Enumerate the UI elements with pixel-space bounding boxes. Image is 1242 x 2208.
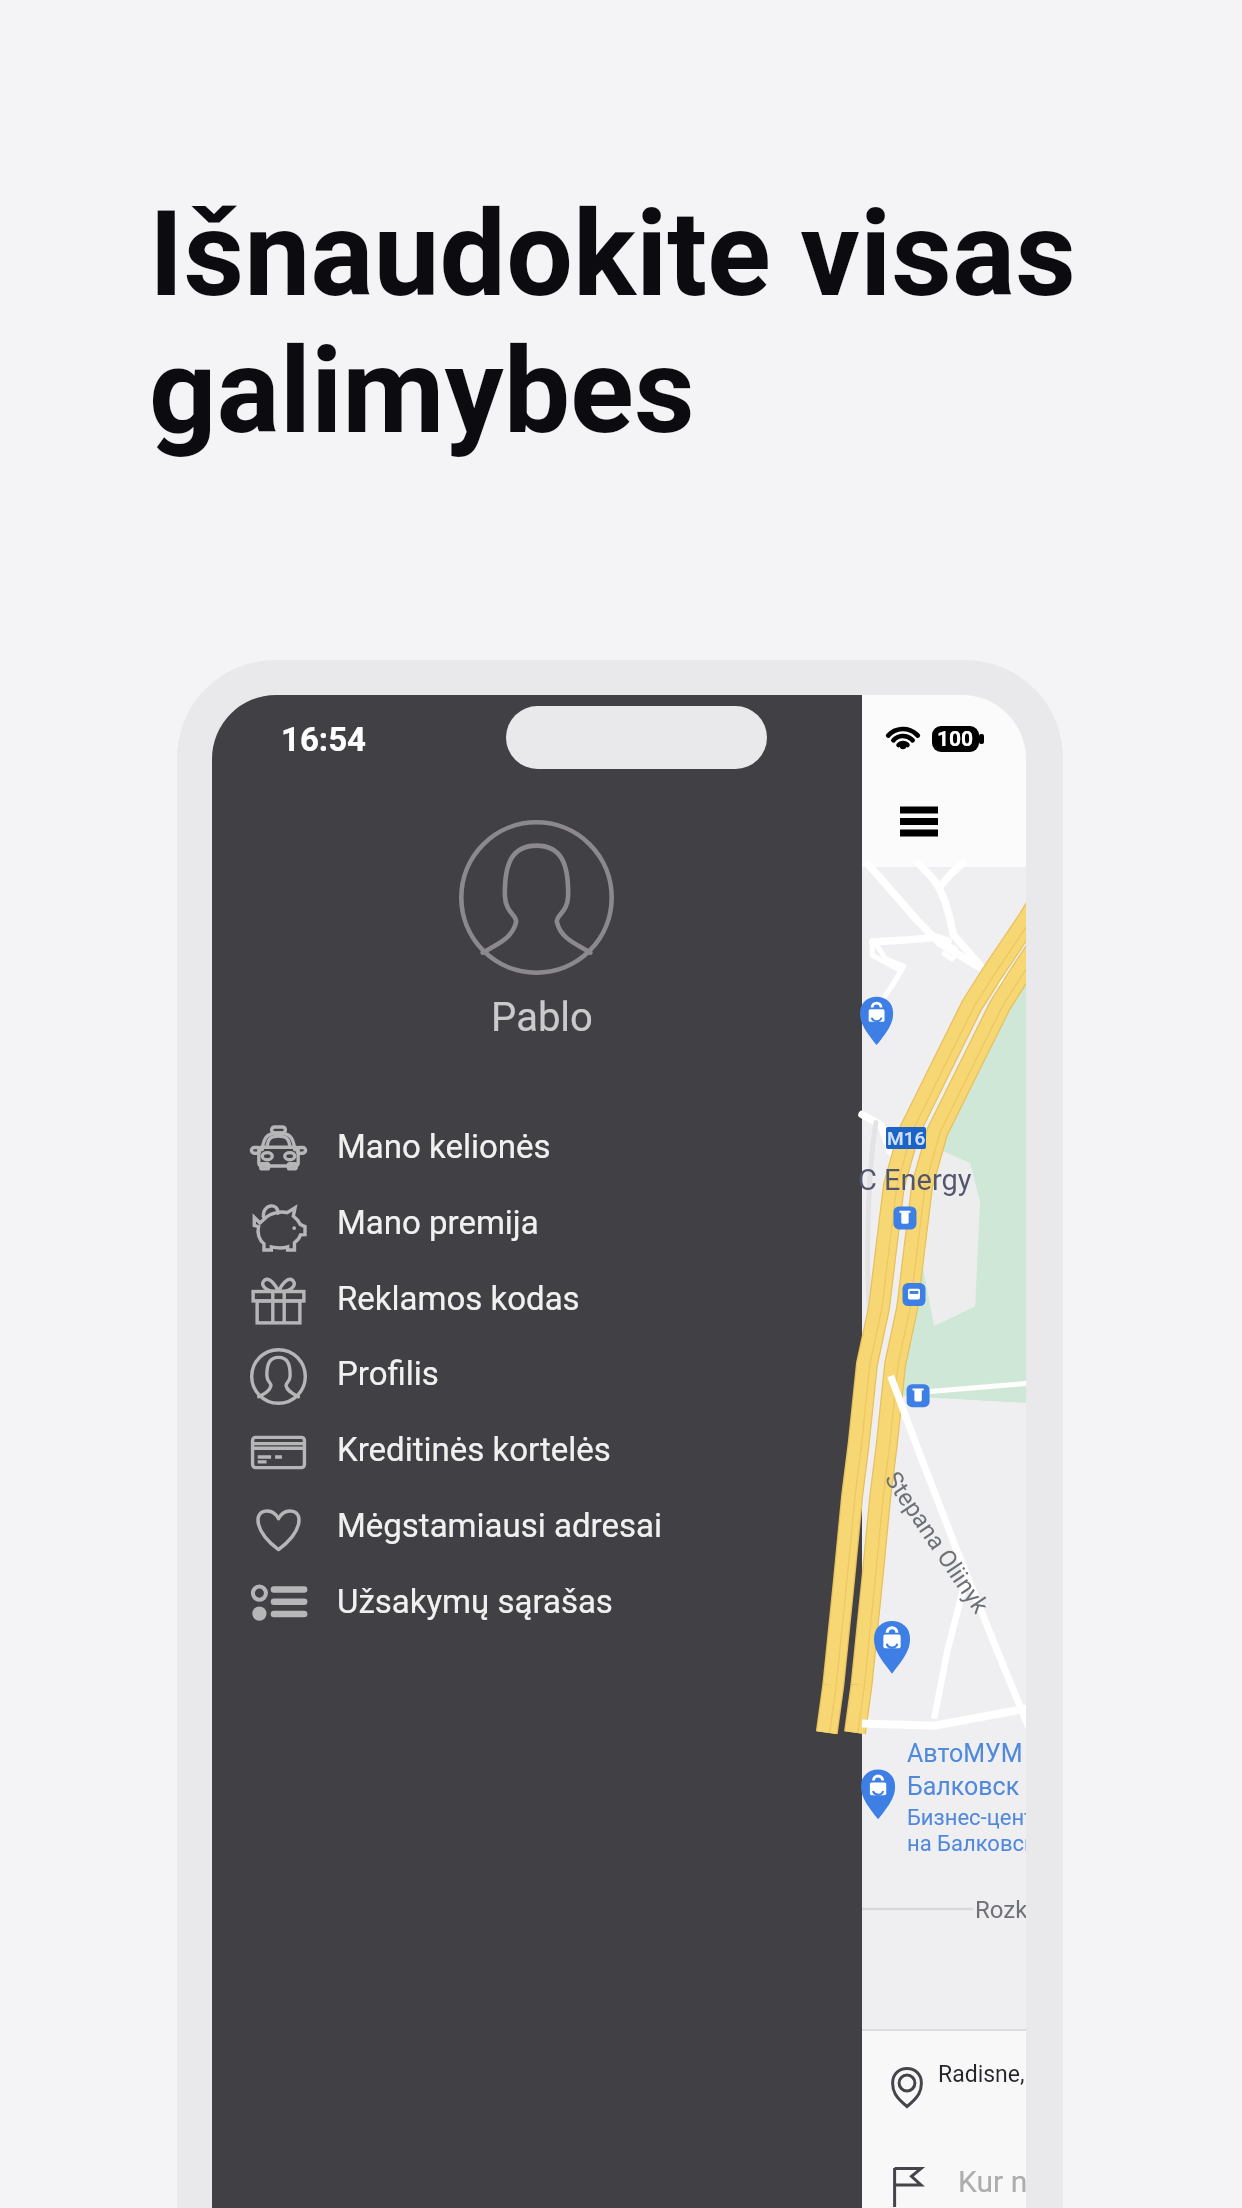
button[interactable]: Menu <box>894 800 944 842</box>
staticText: Pablo <box>222 994 862 1041</box>
staticText: Reklamos kodas <box>337 1279 580 1318</box>
staticText: Stepana Oliinyka descen <box>879 1466 994 1618</box>
button[interactable]: Užsakymų sąrašas <box>219 1563 839 1639</box>
button[interactable]: Mano premija <box>219 1184 839 1260</box>
staticText: Mano kelionės <box>337 1127 551 1166</box>
staticText: Išnaudokite visas galimybes <box>149 186 1076 460</box>
staticText: 100 <box>937 727 974 752</box>
staticText: 16:54 <box>281 720 367 759</box>
staticText: C Energy <box>858 1163 972 1197</box>
staticText: Mėgstamiausi adresai <box>337 1506 662 1545</box>
button[interactable]: Profilis <box>219 1335 839 1411</box>
staticText: Kur n <box>958 2164 1026 2199</box>
staticText: M16 <box>887 1127 926 1149</box>
staticText: Užsakymų sąrašas <box>337 1582 613 1621</box>
staticText: Kreditinės kortelės <box>337 1430 611 1469</box>
button[interactable]: Kreditinės kortelės <box>219 1411 839 1487</box>
staticText: Балковск <box>907 1772 1020 1801</box>
staticText: Profilis <box>337 1354 439 1393</box>
staticText: АвтоМУМ <box>907 1739 1023 1768</box>
staticText: Бизнес-цент <box>907 1805 1026 1831</box>
button[interactable]: Reklamos kodas <box>219 1260 839 1336</box>
staticText: Mano premija <box>337 1203 539 1242</box>
staticText: Radisne, <box>938 2061 1025 2088</box>
staticText: Rozk <box>975 1896 1026 1924</box>
staticText: на Балковск <box>907 1831 1026 1857</box>
button[interactable]: Mano kelionės <box>219 1108 839 1184</box>
button[interactable]: Mėgstamiausi adresai <box>219 1487 839 1563</box>
